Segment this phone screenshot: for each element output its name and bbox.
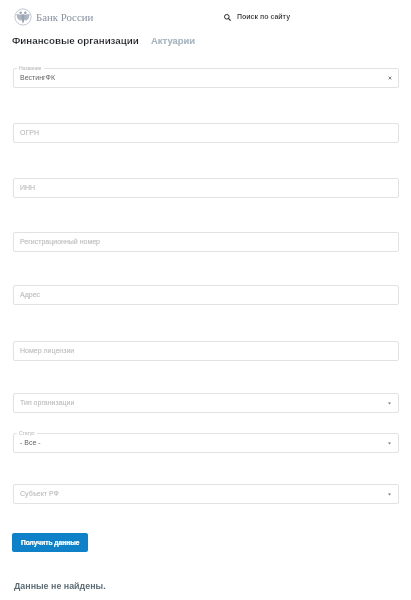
button[interactable]: Поиск по сайту [224,13,291,21]
button[interactable]: Адрес [13,285,399,305]
button[interactable]: ИНН [13,178,399,198]
other: Раскрыть список [387,441,392,446]
staticText: Субъект РФ [20,490,59,498]
staticText: ОГРН [20,129,39,137]
other: Поиск по сайту [224,14,231,21]
staticText: Адрес [20,291,41,299]
button[interactable]: Субъект РФ [13,484,399,504]
button[interactable]: Банк России [14,8,94,26]
staticText: Статус [19,430,35,436]
staticText: Банк России [36,11,94,23]
staticText: ИНН [20,184,36,192]
staticText: - Все - [20,439,41,447]
staticText: Данные не найдены. [14,581,106,591]
other: Раскрыть список [387,401,392,406]
staticText: Получить данные [21,539,80,546]
button[interactable]: ОГРН [13,123,399,143]
button[interactable]: - Все - [13,433,399,453]
staticText: Тип организации [20,399,75,407]
button[interactable]: Финансовые организации [12,35,139,46]
staticText: ВестингФК [20,74,55,82]
staticText: Регистрационный номер [20,238,100,246]
other: Раскрыть список [387,492,392,497]
button[interactable]: Тип организации [13,393,399,413]
staticText: Название [19,65,42,71]
button[interactable]: ВестингФК [13,68,399,88]
button[interactable]: Номер лицензии [13,341,399,361]
button[interactable]: Получить данные [12,533,88,552]
staticText: Поиск по сайту [237,13,291,21]
button[interactable]: Регистрационный номер [13,232,399,252]
staticText: Номер лицензии [20,347,75,355]
other: Очистить [388,76,392,80]
button[interactable]: Актуарии [151,35,196,46]
